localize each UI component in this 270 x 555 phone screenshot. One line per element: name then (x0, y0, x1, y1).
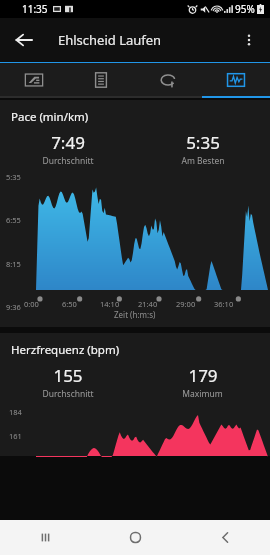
button[interactable]: Back (6, 22, 42, 58)
staticText: 6:50 (62, 299, 77, 309)
staticText: 11:35 (22, 2, 48, 16)
staticText: 5:35 (186, 131, 220, 154)
button[interactable]: Recent apps (0, 520, 90, 555)
staticText: 179 (188, 364, 218, 387)
staticText: 8:15 (6, 259, 21, 269)
staticText: 155 (53, 364, 83, 387)
staticText: 184 (9, 407, 22, 417)
staticText: 0:00 (24, 299, 39, 309)
staticText: Durchschnitt (42, 388, 94, 400)
button[interactable]: Charts (202, 63, 270, 96)
staticText: Ehlscheid Laufen (58, 31, 162, 49)
staticText: 7:49 (51, 131, 85, 154)
staticText: 29:00 (176, 299, 196, 309)
staticText: 10:56 (6, 346, 26, 356)
staticText: 36:10 (214, 299, 234, 309)
button[interactable]: Map (0, 63, 67, 96)
staticText: Pace (min/km) (11, 109, 89, 125)
button[interactable]: Laps (134, 63, 202, 96)
staticText: 9:36 (6, 302, 21, 312)
staticText: 5:35 (6, 172, 21, 182)
button[interactable]: Home (90, 520, 180, 555)
button[interactable]: More options (232, 23, 266, 57)
button[interactable]: Back (180, 520, 270, 555)
staticText: Zeit (h:m:s) (114, 309, 156, 320)
staticText: 161 (9, 431, 22, 441)
button[interactable]: Details (67, 63, 134, 96)
staticText: 14:10 (100, 299, 120, 309)
staticText: 21:40 (138, 299, 158, 309)
staticText: 95% (235, 2, 255, 16)
staticText: 6:55 (6, 215, 21, 225)
staticText: Durchschnitt (42, 155, 94, 167)
staticText: Maximum (182, 388, 223, 400)
staticText: Am Besten (181, 155, 225, 167)
staticText: Herzfrequenz (bpm) (11, 342, 120, 358)
